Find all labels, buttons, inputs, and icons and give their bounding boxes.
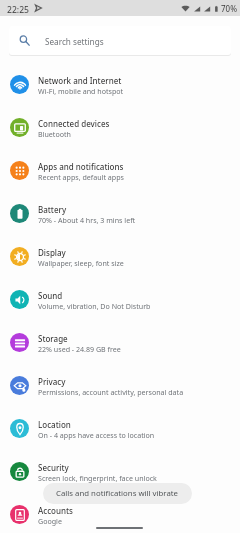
button[interactable]: Apps and notifications bbox=[0, 149, 240, 192]
staticText: Privacy bbox=[38, 376, 66, 387]
staticText: Network and Internet bbox=[38, 75, 122, 86]
staticText: Screen lock, fingerprint, face unlock bbox=[38, 473, 157, 483]
staticText: Connected devices bbox=[38, 118, 110, 129]
other: Search bbox=[19, 35, 30, 46]
button[interactable]: Location bbox=[0, 407, 240, 450]
staticText: Apps and notifications bbox=[38, 161, 124, 172]
button[interactable]: Security bbox=[0, 450, 240, 493]
staticText: Location bbox=[38, 419, 71, 430]
staticText: Google bbox=[38, 516, 62, 526]
button[interactable]: Display bbox=[0, 235, 240, 278]
staticText: 22:25 bbox=[7, 4, 30, 16]
staticText: 70% bbox=[221, 3, 237, 14]
staticText: Security bbox=[38, 462, 69, 473]
staticText: 70% - About 4 hrs, 3 mins left bbox=[38, 215, 136, 225]
staticText: Accounts bbox=[38, 505, 73, 516]
button[interactable]: Battery bbox=[0, 192, 240, 235]
staticText: Battery bbox=[38, 204, 67, 215]
button[interactable]: Storage bbox=[0, 321, 240, 364]
staticText: Sound bbox=[38, 290, 63, 301]
staticText: Volume, vibration, Do Not Disturb bbox=[38, 301, 151, 311]
staticText: Search settings bbox=[45, 36, 104, 47]
staticText: Bluetooth bbox=[38, 129, 71, 139]
button[interactable]: Network and Internet bbox=[0, 63, 240, 106]
staticText: Recent apps, default apps bbox=[38, 172, 124, 182]
button[interactable]: Sound bbox=[0, 278, 240, 321]
staticText: Wi-Fi, mobile and hotspot bbox=[38, 86, 124, 96]
staticText: Calls and notifications will vibrate bbox=[56, 488, 179, 499]
staticText: Wallpaper, sleep, font size bbox=[38, 258, 124, 268]
button[interactable]: Search bbox=[9, 26, 231, 55]
staticText: Permissions, account activity, personal … bbox=[38, 387, 184, 397]
button[interactable]: Connected devices bbox=[0, 106, 240, 149]
staticText: 22% used - 24.89 GB free bbox=[38, 344, 121, 354]
staticText: On - 4 apps have access to location bbox=[38, 430, 155, 440]
staticText: Storage bbox=[38, 333, 68, 344]
button[interactable]: Privacy bbox=[0, 364, 240, 407]
staticText: Display bbox=[38, 247, 66, 258]
button[interactable]: Accounts bbox=[0, 493, 240, 533]
